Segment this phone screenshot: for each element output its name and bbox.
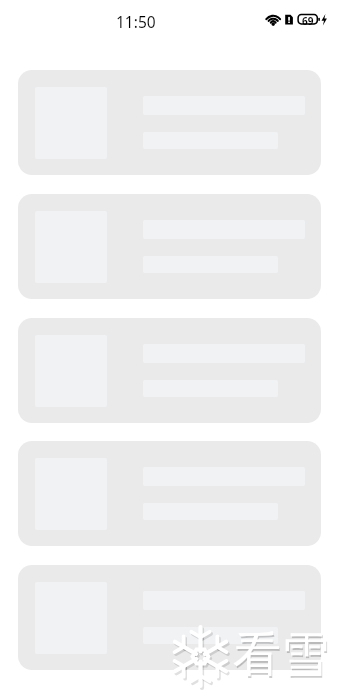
button[interactable] [18, 565, 321, 670]
other: Snowflake watermark [170, 624, 231, 689]
button[interactable] [18, 318, 321, 423]
staticText: 69 [302, 14, 314, 28]
staticText: 11:50 [116, 11, 156, 32]
button[interactable] [18, 441, 321, 546]
staticText: 看雪 [233, 625, 329, 685]
button[interactable] [18, 194, 321, 299]
staticText: 看雪 [234, 627, 330, 687]
button[interactable] [18, 70, 321, 175]
